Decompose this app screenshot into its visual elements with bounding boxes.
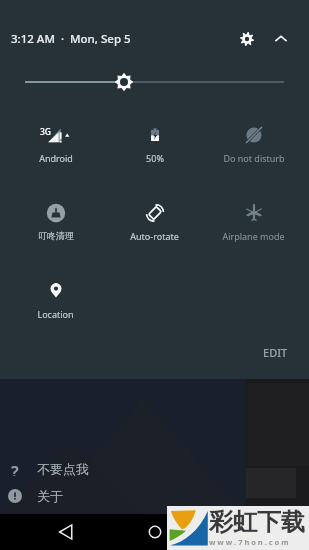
staticText: Android	[39, 152, 73, 164]
button[interactable]: Recents	[222, 514, 266, 550]
staticText: w w w . 7 h o n . c o m	[209, 537, 289, 547]
staticText: 3G	[40, 126, 52, 138]
staticText: Airplane mode	[222, 230, 285, 242]
button[interactable]: Do not disturb	[204, 103, 303, 181]
staticText: ?	[11, 461, 19, 476]
button[interactable]: Home	[133, 514, 177, 550]
staticText: Do not disturb	[223, 152, 285, 164]
button[interactable]: Back	[44, 514, 88, 550]
button[interactable]: Location	[6, 259, 105, 337]
staticText: 不要点我	[37, 461, 89, 477]
staticText: Auto-rotate	[130, 230, 179, 242]
staticText: Location	[37, 308, 74, 320]
button[interactable]: ?	[0, 455, 309, 482]
button[interactable]: Auto-rotate	[105, 181, 204, 259]
staticText: 3:12 AM · Mon, Sep 5	[11, 31, 131, 47]
staticText: 关于	[37, 488, 63, 504]
staticText: 彩虹下载	[209, 507, 305, 537]
button[interactable]: 3G	[6, 103, 105, 181]
button[interactable]: 关于	[0, 482, 309, 509]
button[interactable]: 叮咚清理	[6, 181, 105, 259]
button[interactable]: Settings	[232, 24, 262, 54]
staticText: 50%	[146, 152, 164, 164]
button[interactable]: Brightness	[0, 68, 309, 96]
staticText: EDIT	[263, 345, 288, 360]
button[interactable]: Collapse	[267, 25, 295, 53]
button[interactable]: 50%	[105, 103, 204, 181]
button[interactable]: EDIT	[242, 340, 309, 365]
staticText: 叮咚清理	[38, 230, 74, 241]
button[interactable]: Airplane mode	[204, 181, 303, 259]
